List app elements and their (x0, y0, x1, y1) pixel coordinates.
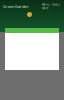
staticText: Green Garden (3, 4, 28, 9)
staticText: Menu Order More (42, 3, 61, 10)
